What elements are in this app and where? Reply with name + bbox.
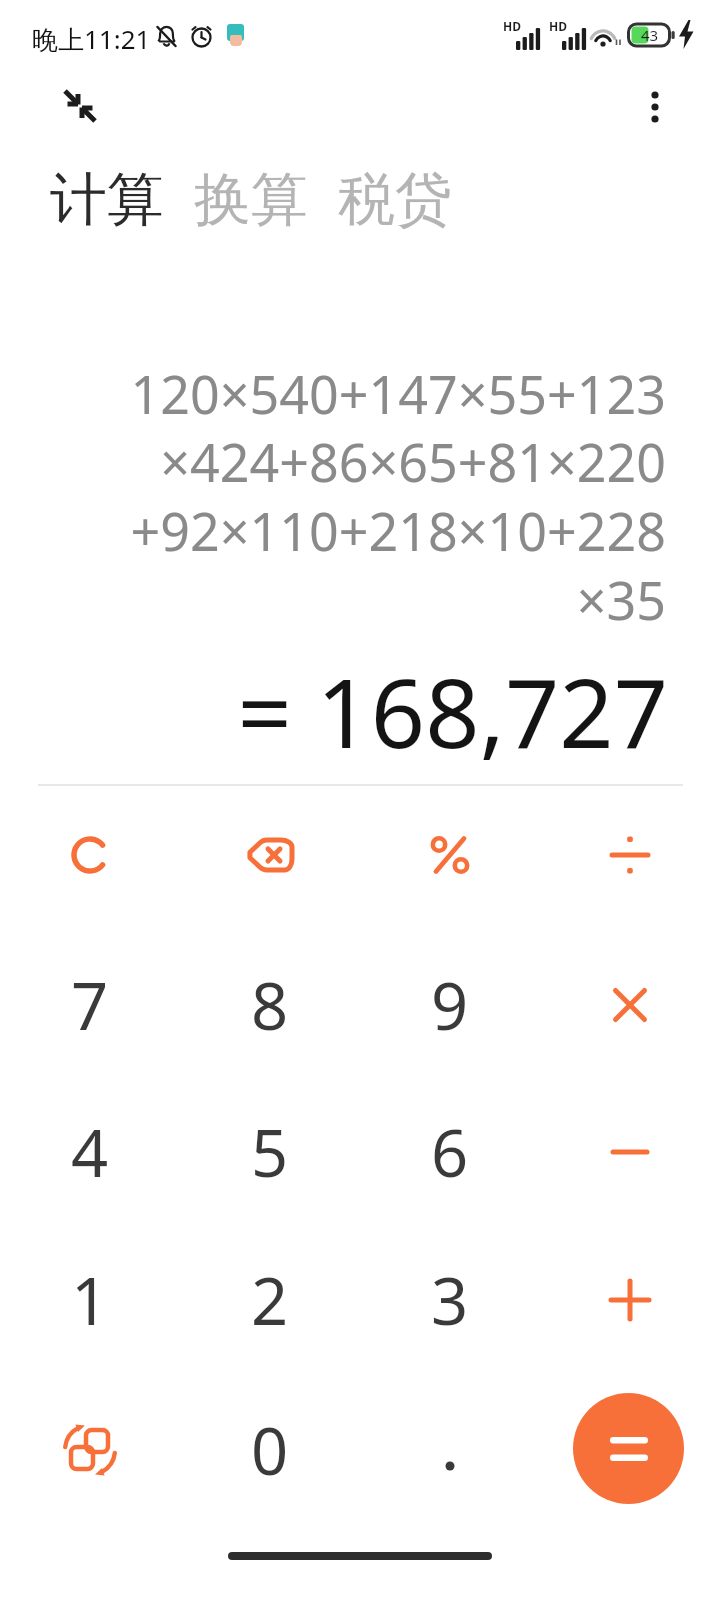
button[interactable] [180,781,360,929]
staticText: 8 [251,961,289,1050]
button[interactable] [0,781,180,929]
button[interactable]: 4 [0,1078,180,1226]
staticText: 2 [251,1256,289,1345]
staticText: 120×540+147×55+123 ×424+86×65+81×220 +92… [0,358,666,635]
button[interactable] [360,781,540,929]
button[interactable] [60,86,100,126]
staticText: 4 [71,1108,109,1197]
button[interactable] [573,1393,684,1504]
button[interactable]: 6 [360,1078,540,1226]
staticText: 换算 [194,164,308,236]
staticText: 9 [431,961,469,1050]
staticText: HD [503,18,521,34]
staticText: HD [549,18,567,34]
button[interactable]: 0 [180,1376,360,1524]
button[interactable]: 9 [360,931,540,1079]
button[interactable]: 计算 [50,164,452,236]
staticText: 5 [251,1108,289,1197]
staticText: 计算 [50,164,164,236]
staticText: 1 [71,1256,109,1345]
button[interactable]: 7 [0,931,180,1079]
button[interactable] [540,931,720,1079]
button[interactable] [647,91,663,125]
button[interactable] [540,1078,720,1226]
staticText: 6 [431,1108,469,1197]
staticText: 7 [71,961,109,1050]
button[interactable]: 3 [360,1226,540,1374]
staticText: 43 [641,25,659,45]
button[interactable] [0,1376,180,1524]
staticText: 晚上11:21 [32,21,151,57]
staticText: 税贷 [338,164,452,236]
staticText: = 168,727 [0,646,668,775]
button[interactable] [540,781,720,929]
button[interactable]: 1 [0,1226,180,1374]
button[interactable]: 5 [180,1078,360,1226]
button[interactable] [540,1226,720,1374]
staticText: 3 [431,1256,469,1345]
button[interactable] [360,1376,540,1524]
staticText: 0 [251,1406,289,1495]
button[interactable]: 8 [180,931,360,1079]
button[interactable]: 2 [180,1226,360,1374]
